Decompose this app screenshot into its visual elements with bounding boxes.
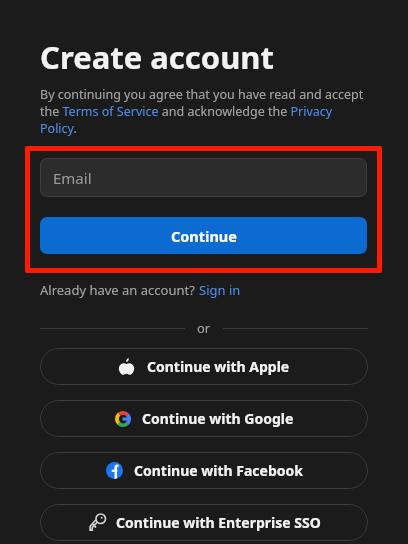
button[interactable]: Enterprise SSO key [40,504,368,541]
other: Google logo [115,411,131,427]
button[interactable]: Email [40,158,367,197]
staticText: Continue with Google [142,409,294,428]
staticText: Continue with Facebook [134,461,303,480]
button[interactable]: Facebook logo [40,452,368,489]
staticText: Already have an account? [40,281,199,299]
other: Facebook logo [106,462,123,479]
staticText: By continuing you agree that you have re… [40,86,372,137]
button[interactable]: Sign in [199,281,241,299]
staticText: Continue with Apple [147,357,290,376]
button[interactable]: Continue [40,217,367,254]
other: Enterprise SSO key [88,513,107,532]
staticText: or [197,319,211,337]
other: Apple logo [118,358,135,375]
button[interactable]: Apple logo [40,348,368,385]
button[interactable]: Google logo [40,400,368,437]
staticText: Email [53,168,92,188]
staticText: Continue [171,226,237,246]
staticText: Create account [40,36,274,78]
staticText: Sign in [199,281,241,299]
staticText: Continue with Enterprise SSO [116,513,321,532]
